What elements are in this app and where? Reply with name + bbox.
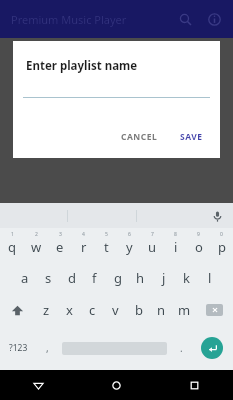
staticText: l [208,269,212,287]
button[interactable]: x [58,294,81,326]
staticText: 5 [105,231,108,238]
staticText: k [183,269,190,287]
button[interactable]: 1 [0,228,24,262]
staticText: s [45,269,52,287]
staticText: 0 [220,231,223,238]
staticText: 6 [128,231,131,238]
staticText: v [112,301,119,319]
button[interactable]: 5 [95,228,118,262]
staticText: 8 [174,231,177,238]
staticText: 3 [59,231,62,238]
button[interactable]: . [171,326,191,370]
button[interactable]: Enter [191,326,233,370]
staticText: u [148,238,157,256]
staticText: ?123 [9,342,28,354]
staticText: a [21,269,29,287]
staticText: g [114,269,122,287]
button[interactable]: 4 [72,228,95,262]
button[interactable]: Voice input [205,204,229,228]
button[interactable]: k [175,262,198,294]
staticText: e [56,238,64,256]
button[interactable]: SAVE [174,127,209,147]
button[interactable]: d [60,262,83,294]
button[interactable]: 7 [141,228,164,262]
staticText: z [43,301,50,319]
staticText: . [180,341,183,355]
staticText: w [31,238,42,256]
button[interactable]: l [198,262,221,294]
staticText: n [157,301,166,319]
button[interactable]: 9 [187,228,210,262]
staticText: q [8,238,16,256]
staticText: h [136,269,145,287]
button[interactable]: n [150,294,173,326]
button[interactable]: Space [57,326,171,370]
staticText: 2 [35,231,38,238]
button[interactable]: Backspace [196,294,233,326]
staticText: r [81,238,87,256]
button[interactable]: 0 [210,228,233,262]
button[interactable]: 2 [24,228,48,262]
staticText: p [218,238,226,256]
button[interactable]: 6 [118,228,141,262]
button[interactable]: g [106,262,129,294]
staticText: SAVE [180,131,203,143]
button[interactable]: f [83,262,106,294]
staticText: f [92,269,97,287]
button[interactable]: j [152,262,175,294]
staticText: d [68,269,76,287]
staticText: , [46,341,49,355]
button[interactable]: c [81,294,104,326]
staticText: y [126,238,133,256]
staticText: 4 [82,231,85,238]
staticText: o [195,238,203,256]
button[interactable]: CANCEL [115,127,164,147]
button[interactable]: Home [77,370,155,400]
staticText: t [104,238,109,256]
button[interactable]: ?123 [0,326,37,370]
staticText: 1 [11,231,14,238]
staticText: b [135,301,143,319]
button[interactable]: s [37,262,60,294]
staticText: Premium Music Player [11,12,127,27]
button[interactable]: a [13,262,37,294]
button[interactable]: Info [201,3,228,35]
staticText: 7 [151,231,154,238]
button[interactable]: m [173,294,196,326]
button[interactable]: , [37,326,57,370]
button[interactable]: b [127,294,150,326]
staticText: x [66,301,73,319]
staticText: 9 [197,231,200,238]
button[interactable]: z [34,294,58,326]
staticText: Enter playlist name [26,58,138,74]
staticText: j [162,269,166,287]
button[interactable]: Shift [0,294,34,326]
staticText: CANCEL [121,131,158,143]
button[interactable]: 3 [48,228,72,262]
button[interactable]: v [104,294,127,326]
staticText: m [178,301,191,319]
button[interactable]: h [129,262,152,294]
button[interactable]: Recents [155,370,233,400]
button[interactable]: 8 [164,228,187,262]
staticText: c [89,301,96,319]
button[interactable]: Search [169,3,201,35]
staticText: i [174,238,178,256]
button[interactable]: Back [0,370,77,400]
